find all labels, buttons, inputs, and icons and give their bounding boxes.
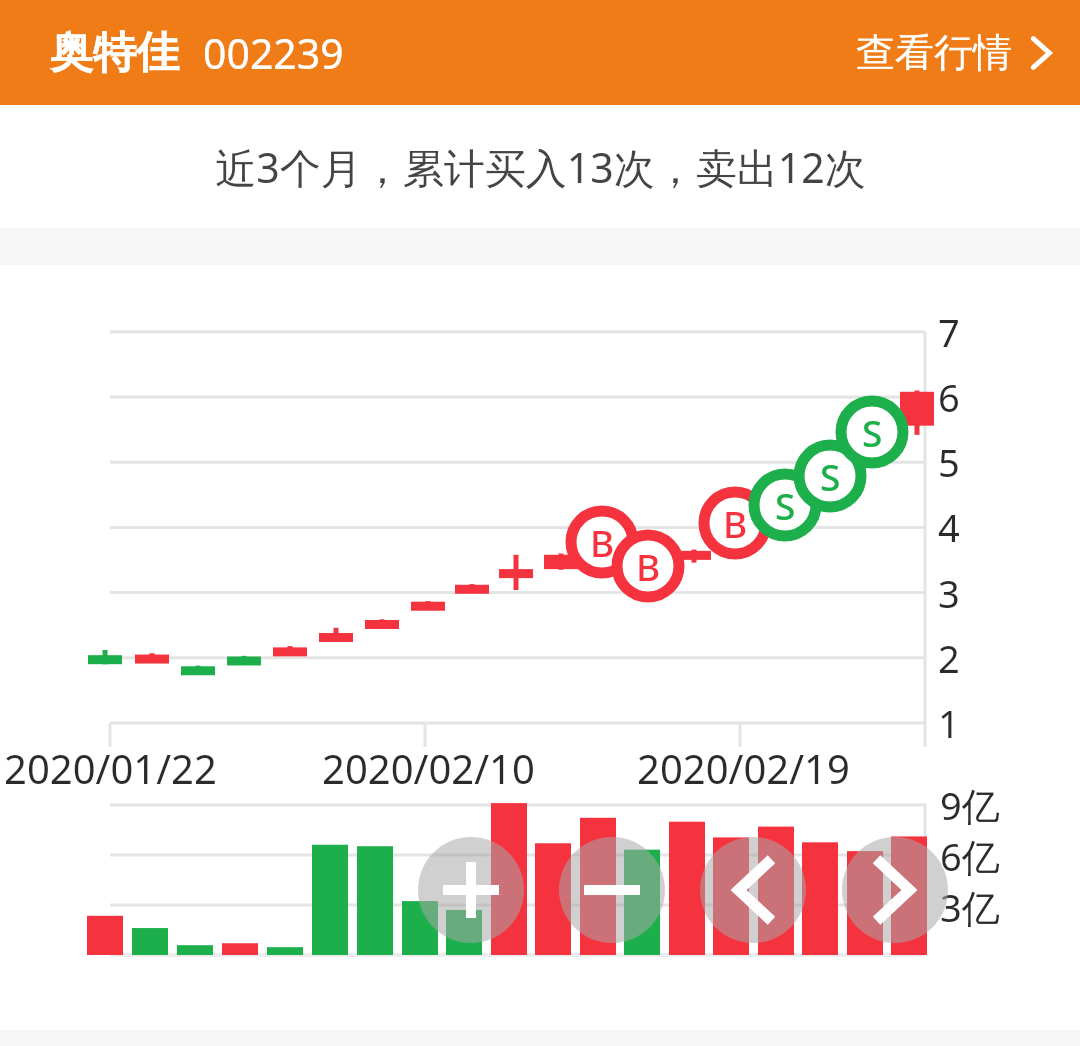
staticText: B: [636, 541, 661, 591]
staticText: S: [820, 451, 841, 501]
staticText: S: [775, 480, 796, 530]
button[interactable]: Zoom out: [559, 837, 665, 943]
staticText: 1: [938, 697, 960, 749]
staticText: S: [862, 407, 883, 457]
staticText: 9亿: [940, 779, 1000, 831]
button[interactable]: 查看行情: [828, 14, 1080, 91]
staticText: B: [590, 517, 615, 567]
button[interactable]: Previous: [700, 837, 806, 943]
staticText: 7: [938, 306, 960, 358]
staticText: 6: [938, 371, 960, 423]
staticText: 3亿: [940, 881, 1000, 933]
staticText: 3: [938, 567, 960, 619]
staticText: B: [723, 498, 748, 548]
staticText: 6亿: [940, 830, 1000, 882]
staticText: 近3个月，累计买入13次，卖出12次: [215, 139, 866, 195]
staticText: 2: [938, 632, 960, 684]
staticText: 4: [938, 501, 960, 553]
staticText: 2020/01/22: [4, 741, 217, 795]
staticText: 2020/02/10: [322, 741, 535, 795]
staticText: 2020/02/19: [637, 741, 850, 795]
staticText: 5: [938, 436, 960, 488]
button[interactable]: Zoom in: [418, 837, 524, 943]
button[interactable]: Next: [842, 837, 948, 943]
staticText: 查看行情: [856, 28, 1012, 77]
staticText: 奥特佳: [50, 26, 179, 80]
staticText: 002239: [203, 25, 344, 81]
